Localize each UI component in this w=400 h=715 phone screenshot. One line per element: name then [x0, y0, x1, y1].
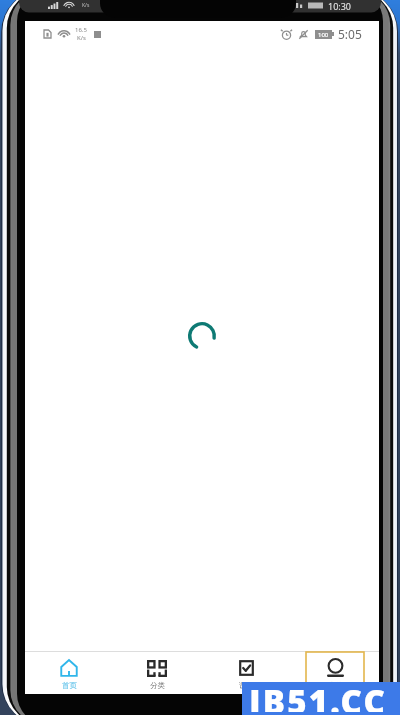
staticText: JB51.CC [249, 679, 387, 712]
button[interactable]: Profile [306, 652, 364, 694]
other: Profile [327, 659, 344, 677]
staticText: 分类 [150, 681, 165, 690]
staticText: 10:30 [328, 0, 352, 10]
button[interactable]: Categories [128, 652, 186, 694]
staticText: 5:05 [338, 26, 362, 42]
staticText: K/s [82, 2, 90, 9]
staticText: K/s [77, 34, 86, 42]
button[interactable]: Home [40, 652, 98, 694]
staticText: 首页 [62, 681, 77, 690]
other: Categories [147, 660, 167, 677]
staticText: 我的 [328, 681, 343, 690]
staticText: 课程 [239, 681, 254, 690]
other: Courses [239, 660, 254, 676]
staticText: 100 [318, 31, 329, 39]
button[interactable]: Courses [217, 652, 275, 694]
staticText: 16.5 [75, 26, 87, 34]
other: Home [60, 659, 78, 677]
